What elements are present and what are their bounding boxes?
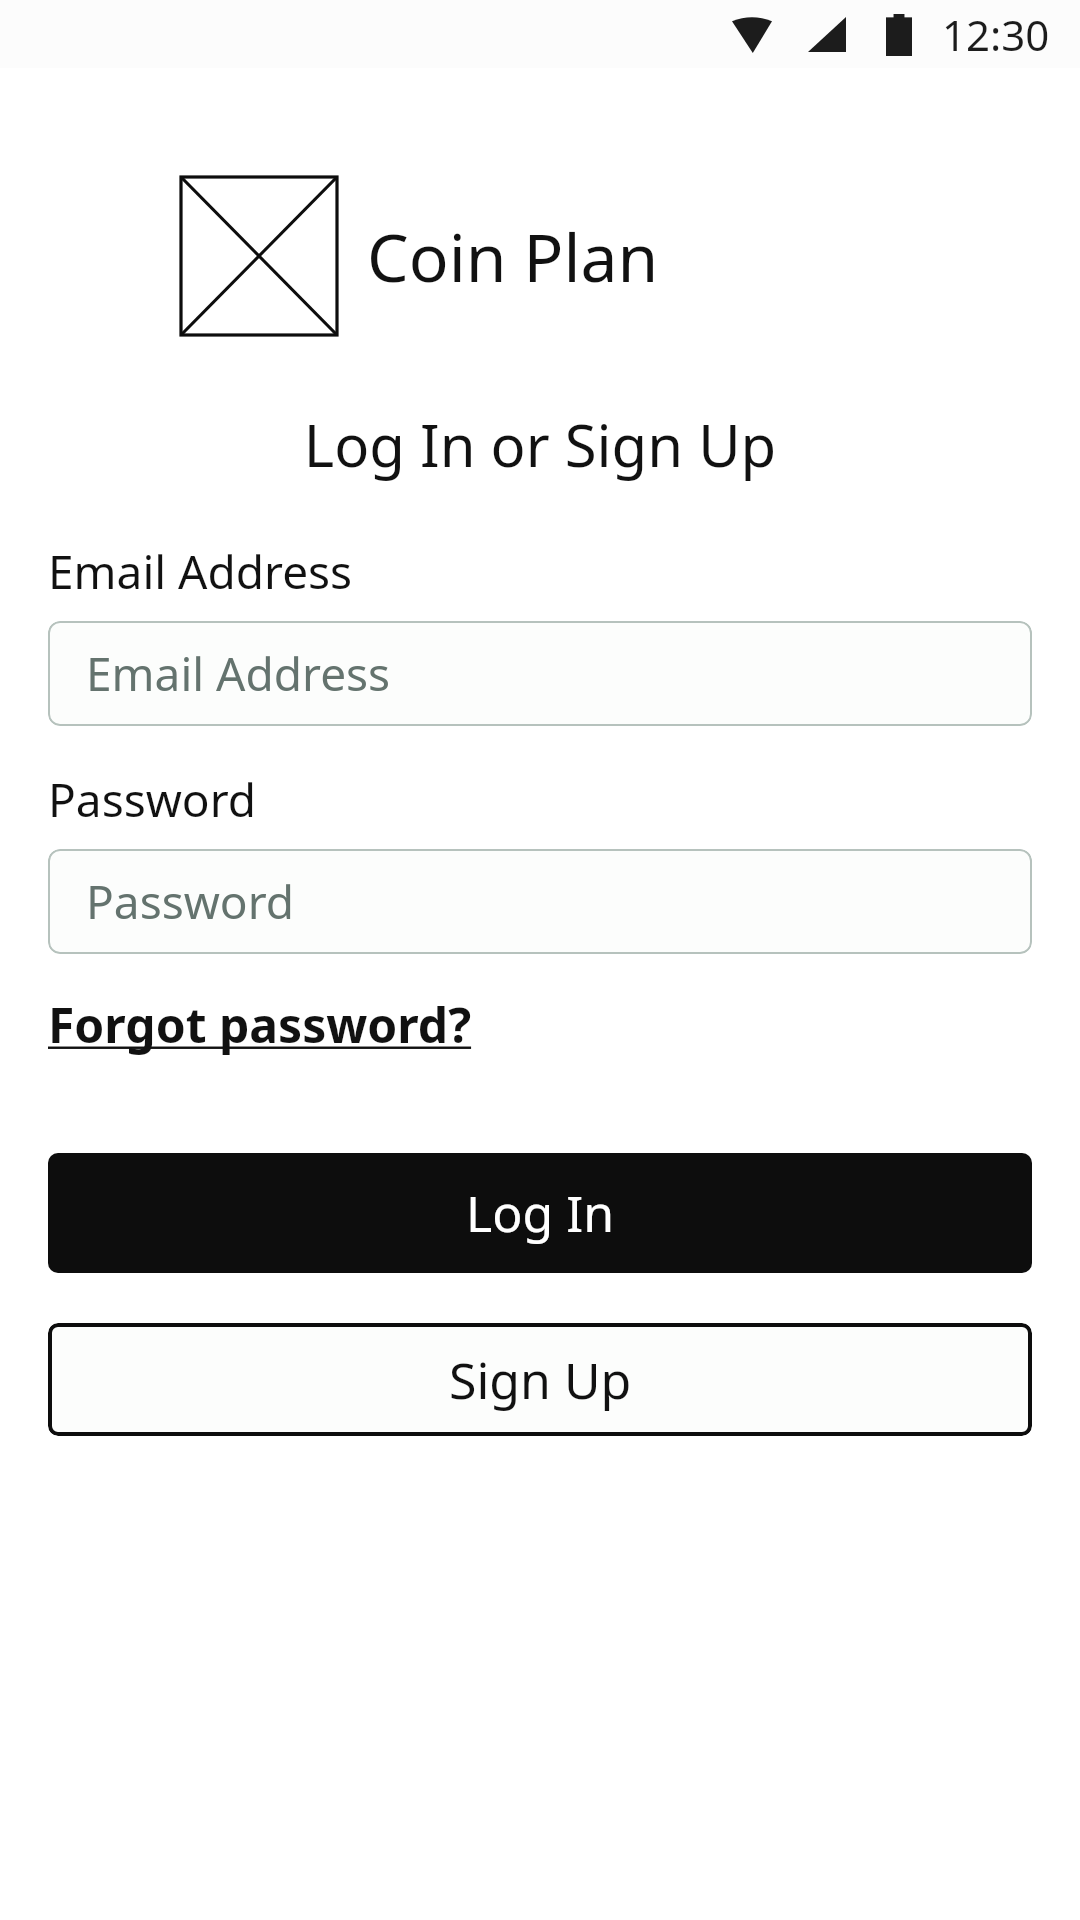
staticText: Sign Up [449,1346,632,1414]
staticText: Coin Plan [367,211,659,301]
button[interactable]: Log In [48,1153,1032,1273]
staticText: Email Address [48,540,353,603]
staticText: Log In [466,1179,615,1247]
button[interactable]: Forgot password? [48,992,472,1057]
staticText: Forgot password? [48,992,472,1057]
staticText: Email Address [86,642,391,705]
button[interactable]: Email Address [48,621,1032,726]
button[interactable]: Password [48,849,1032,954]
staticText: Log In or Sign Up [0,405,1080,484]
staticText: Password [86,870,295,933]
staticText: Password [48,768,257,831]
staticText: 12:30 [942,6,1050,63]
button[interactable]: Sign Up [48,1323,1032,1436]
